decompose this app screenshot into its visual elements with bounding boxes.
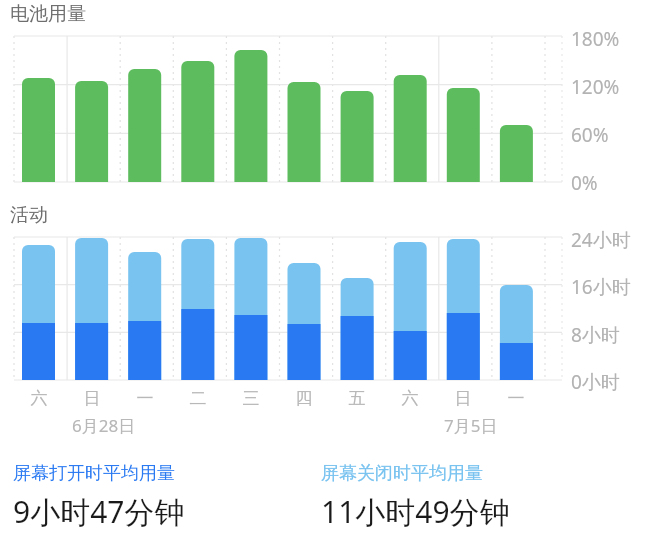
staticText: 一 xyxy=(127,388,163,409)
button[interactable]: 屏幕打开时平均用量 xyxy=(0,462,304,532)
staticText: 8小时 xyxy=(571,322,620,348)
staticText: 活动 xyxy=(10,203,48,227)
button[interactable]: 活动 xyxy=(10,203,48,227)
staticText: 四 xyxy=(286,388,322,409)
staticText: 屏幕关闭时平均用量 xyxy=(321,462,483,485)
staticText: 120% xyxy=(571,74,620,100)
staticText: 6月28日 xyxy=(72,414,136,437)
staticText: 一 xyxy=(498,388,534,409)
staticText: 屏幕打开时平均用量 xyxy=(13,462,175,485)
staticText: 60% xyxy=(571,122,609,148)
staticText: 7月5日 xyxy=(444,414,498,437)
button[interactable]: 屏幕关闭时平均用量 xyxy=(304,462,634,532)
staticText: 9小时47分钟 xyxy=(13,491,185,532)
button[interactable]: 电池用量 xyxy=(10,2,86,26)
staticText: 日 xyxy=(74,388,110,409)
staticText: 0% xyxy=(571,170,598,196)
staticText: 六 xyxy=(392,388,428,409)
staticText: 0小时 xyxy=(571,369,620,395)
staticText: 电池用量 xyxy=(10,2,86,26)
staticText: 180% xyxy=(571,26,620,52)
staticText: 24小时 xyxy=(571,227,631,253)
staticText: 16小时 xyxy=(571,274,631,300)
staticText: 二 xyxy=(180,388,216,409)
staticText: 日 xyxy=(445,388,481,409)
staticText: 六 xyxy=(21,388,57,409)
staticText: 五 xyxy=(339,388,375,409)
staticText: 11小时49分钟 xyxy=(321,491,510,532)
staticText: 三 xyxy=(233,388,269,409)
